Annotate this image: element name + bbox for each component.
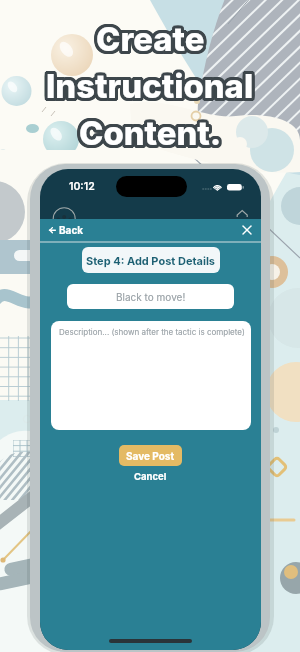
button[interactable]: Black to move!	[67, 284, 234, 309]
button[interactable]: Back	[40, 219, 261, 241]
staticText: Instructional	[49, 67, 257, 107]
staticText: Content.	[77, 116, 220, 156]
staticText: Create	[93, 19, 202, 59]
staticText: Content.	[76, 115, 219, 155]
staticText: Instructional	[46, 66, 254, 106]
staticText: Instructional	[43, 68, 251, 108]
staticText: Create	[98, 16, 207, 56]
staticText: Create	[93, 21, 202, 61]
staticText: Cancel	[134, 471, 167, 482]
staticText: Create	[94, 22, 203, 62]
staticText: Content.	[76, 111, 219, 151]
staticText: Content.	[82, 115, 225, 155]
staticText: Content.	[80, 116, 223, 156]
staticText: Instructional	[49, 64, 257, 104]
staticText: Instructional	[45, 69, 253, 109]
staticText: Instructional	[43, 66, 251, 106]
staticText: Content.	[81, 116, 224, 156]
staticText: Instructional	[43, 64, 251, 104]
staticText: Create	[97, 22, 206, 62]
staticText: Content.	[78, 110, 221, 150]
staticText: Save Post	[126, 450, 175, 462]
staticText: Create	[96, 16, 205, 56]
staticText: Instructional	[43, 67, 251, 107]
staticText: Black to move!	[116, 291, 186, 303]
staticText: Back	[59, 224, 84, 236]
staticText: Create	[99, 17, 208, 57]
button[interactable]: Save Post	[119, 445, 182, 466]
staticText: Instructional	[46, 69, 254, 109]
staticText: Instructional	[49, 68, 257, 108]
staticText: Instructional	[48, 69, 256, 109]
staticText: Create	[93, 18, 202, 58]
staticText: Step 4: Add Post Details	[86, 254, 216, 267]
button[interactable]: Cancel	[134, 471, 167, 482]
staticText: Create	[99, 21, 208, 61]
staticText: Instructional	[49, 65, 257, 105]
staticText: 10:12	[69, 180, 95, 193]
staticText: Instructional	[46, 63, 254, 103]
button[interactable]: Back	[49, 224, 84, 236]
staticText: Content.	[78, 116, 221, 156]
staticText: Create	[97, 16, 206, 56]
staticText: Content.	[76, 113, 219, 153]
staticText: Content.	[79, 116, 222, 156]
staticText: Instructional	[44, 63, 252, 103]
staticText: Description... (shown after the tactic i…	[59, 327, 245, 337]
staticText: Content.	[81, 110, 224, 150]
staticText: Content.	[79, 113, 222, 153]
staticText: Create	[99, 20, 208, 60]
staticText: Content.	[82, 113, 225, 153]
staticText: Create	[98, 22, 207, 62]
staticText: Content.	[76, 112, 219, 152]
staticText: Create	[99, 18, 208, 58]
staticText: Instructional	[48, 63, 256, 103]
button[interactable]: Step 4: Add Post Details	[82, 247, 220, 273]
staticText: Content.	[82, 111, 225, 151]
staticText: Instructional	[45, 63, 253, 103]
staticText: Create	[94, 16, 203, 56]
staticText: Content.	[76, 114, 219, 154]
staticText: Create	[95, 22, 204, 62]
staticText: Instructional	[49, 66, 257, 106]
staticText: Content.	[82, 112, 225, 152]
staticText: Create	[95, 16, 204, 56]
staticText: Instructional	[43, 65, 251, 105]
staticText: Create	[96, 19, 205, 59]
staticText: Create	[96, 22, 205, 62]
staticText: Content.	[77, 110, 220, 150]
staticText: Content.	[82, 114, 225, 154]
button[interactable]: Close	[238, 221, 256, 239]
staticText: Create	[93, 17, 202, 57]
staticText: Content.	[80, 110, 223, 150]
staticText: Instructional	[47, 69, 255, 109]
staticText: Create	[93, 20, 202, 60]
staticText: Content.	[79, 110, 222, 150]
staticText: Instructional	[47, 63, 255, 103]
staticText: Create	[99, 19, 208, 59]
button[interactable]: Description... (shown after the tactic i…	[51, 321, 251, 430]
staticText: Instructional	[44, 69, 252, 109]
